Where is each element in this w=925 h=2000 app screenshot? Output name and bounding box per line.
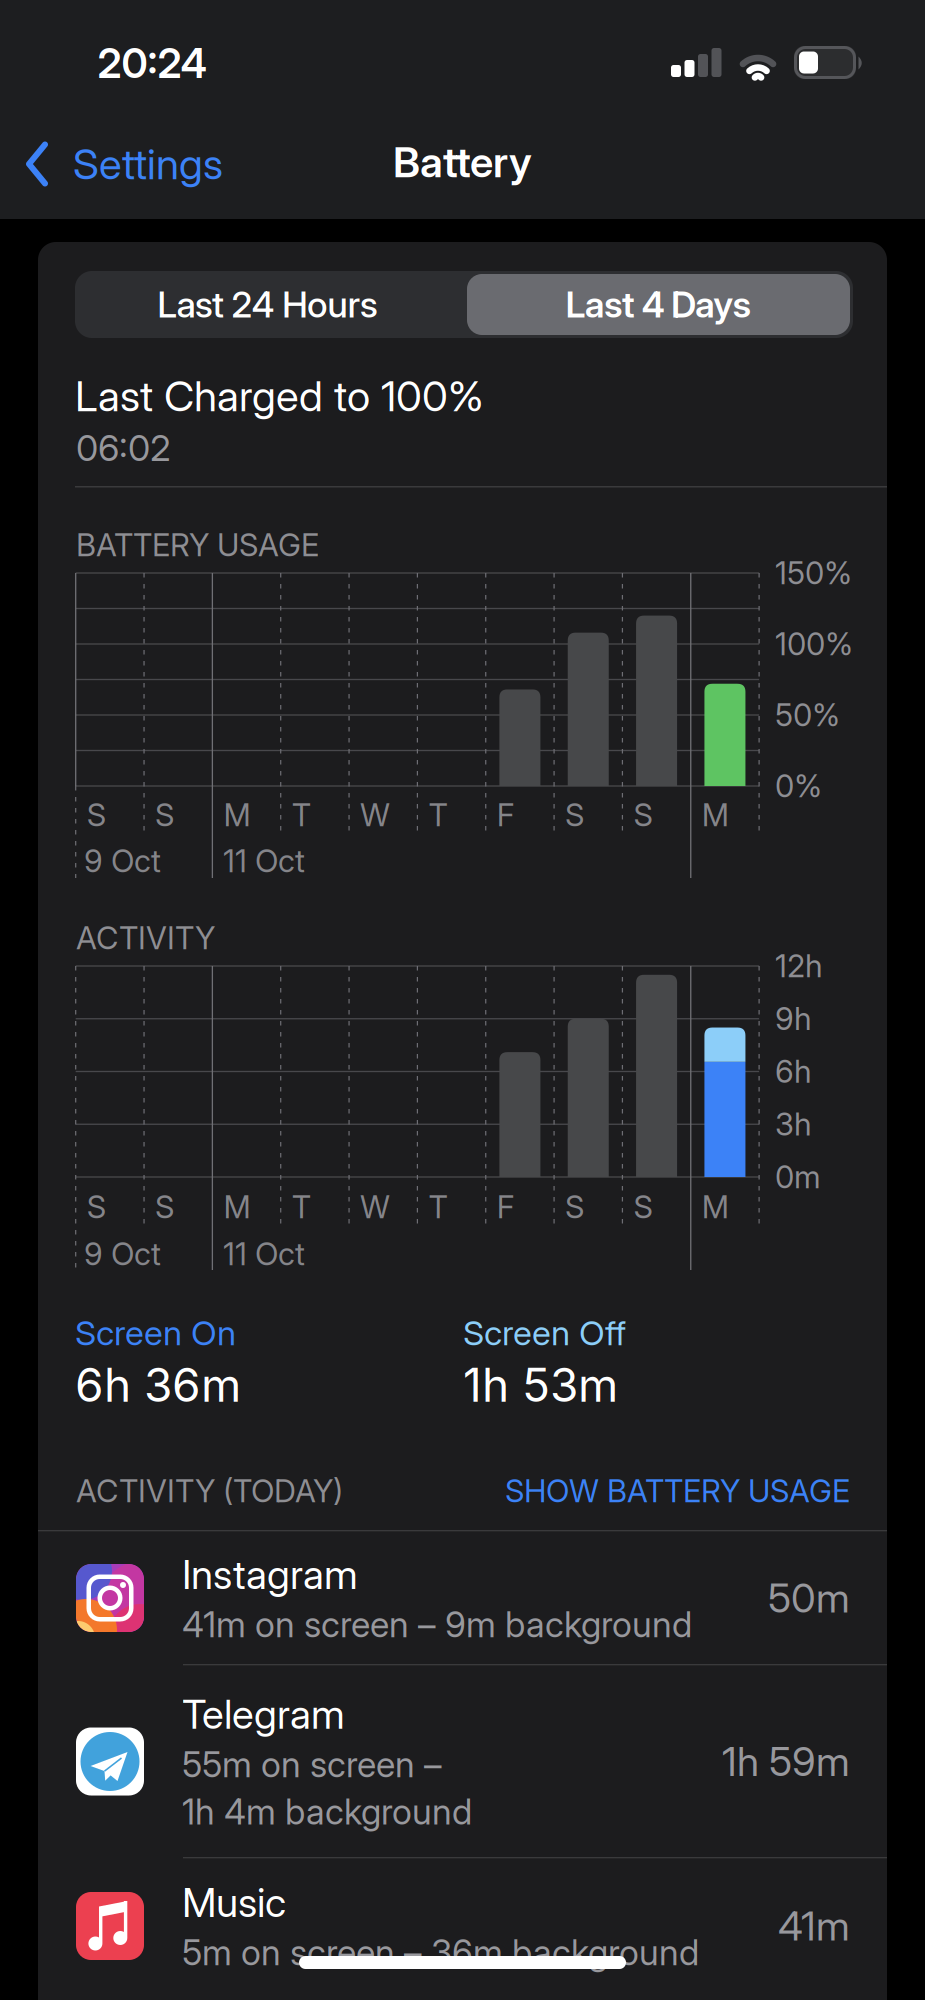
staticText: Battery <box>393 137 532 187</box>
staticText: T <box>428 797 447 833</box>
staticText: 0% <box>775 768 822 804</box>
staticText: S <box>87 797 106 833</box>
staticText: Last 24 Hours <box>157 283 378 326</box>
staticText: S <box>155 797 174 833</box>
staticText: W <box>360 797 390 833</box>
staticText: 41m on screen – 9m background <box>182 1604 692 1645</box>
staticText: 3h <box>775 1106 812 1143</box>
staticText: Last 4 Days <box>565 283 751 326</box>
staticText: T <box>428 1189 447 1225</box>
staticText: Settings <box>73 139 223 189</box>
button[interactable]: SHOW BATTERY USAGE <box>430 1471 850 1511</box>
staticText: 50% <box>775 697 840 733</box>
staticText: S <box>633 797 652 833</box>
staticText: M <box>223 797 250 833</box>
staticText: Instagram <box>182 1551 358 1598</box>
staticText: M <box>702 1189 729 1225</box>
staticText: Music <box>182 1879 286 1926</box>
staticText: 1h 53m <box>463 1358 618 1412</box>
staticText: BATTERY USAGE <box>76 527 319 563</box>
staticText: 12h <box>775 948 823 984</box>
staticText: 150% <box>775 555 852 591</box>
staticText: Screen On <box>75 1313 236 1353</box>
staticText: SHOW BATTERY USAGE <box>505 1473 850 1509</box>
staticText: F <box>497 1189 515 1225</box>
staticText: Screen Off <box>463 1313 626 1353</box>
staticText: 6h <box>775 1053 812 1090</box>
staticText: ACTIVITY <box>76 920 215 956</box>
staticText: F <box>497 797 515 833</box>
staticText: 1h 59m <box>722 1738 850 1785</box>
staticText: 06:02 <box>76 427 171 469</box>
staticText: 0m <box>775 1159 821 1195</box>
staticText: 20:24 <box>97 39 206 87</box>
staticText: W <box>360 1189 390 1225</box>
staticText: T <box>292 797 311 833</box>
staticText: M <box>223 1189 250 1225</box>
staticText: ACTIVITY (TODAY) <box>76 1473 343 1509</box>
button[interactable]: Settings <box>25 129 345 199</box>
staticText: S <box>87 1189 106 1225</box>
staticText: T <box>292 1189 311 1225</box>
staticText: 50m <box>768 1574 850 1622</box>
staticText: 55m on screen – <box>182 1744 442 1785</box>
staticText: 11 Oct <box>223 843 305 879</box>
staticText: 41m <box>778 1902 850 1950</box>
staticText: 6h 36m <box>75 1358 241 1412</box>
button[interactable]: Last 4 Days <box>467 274 850 335</box>
button[interactable]: Music <box>38 1859 887 1993</box>
staticText: 9h <box>775 1000 812 1037</box>
staticText: 5m on screen – 36m background <box>182 1932 699 1973</box>
staticText: 9 Oct <box>84 1236 161 1272</box>
button[interactable]: Last 24 Hours <box>75 271 460 338</box>
staticText: S <box>565 797 584 833</box>
staticText: Telegram <box>182 1691 345 1738</box>
staticText: 1h 4m background <box>182 1791 472 1832</box>
staticText: M <box>702 797 729 833</box>
staticText: 11 Oct <box>223 1236 305 1272</box>
button[interactable]: Telegram <box>38 1666 887 1857</box>
staticText: Last Charged to 100% <box>75 371 484 421</box>
staticText: 100% <box>775 626 853 662</box>
staticText: 9 Oct <box>84 843 161 879</box>
button[interactable]: Instagram <box>38 1531 887 1665</box>
staticText: S <box>565 1189 584 1225</box>
staticText: S <box>155 1189 174 1225</box>
staticText: S <box>633 1189 652 1225</box>
